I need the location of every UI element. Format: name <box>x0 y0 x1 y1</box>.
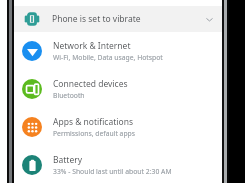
staticText: Wi-Fi, Mobile, Data usage, Hotspot <box>53 53 163 62</box>
staticText: Battery <box>53 154 83 166</box>
other: Expand <box>205 15 214 24</box>
button[interactable]: Connected devices <box>14 70 222 108</box>
staticText: 33% - Should last until about 2:30 AM <box>53 167 172 176</box>
staticText: Network & Internet <box>53 40 131 52</box>
button[interactable]: Apps & notifications <box>14 108 222 146</box>
staticText: Apps & notifications <box>53 116 133 128</box>
staticText: Connected devices <box>53 78 128 90</box>
button[interactable]: Battery <box>14 146 222 183</box>
staticText: Bluetooth <box>53 91 85 100</box>
staticText: Phone is set to vibrate <box>52 13 141 25</box>
button[interactable]: Phone is set to vibrate <box>14 6 222 32</box>
button[interactable]: Network & Internet <box>14 32 222 70</box>
staticText: Permissions, default apps <box>53 129 136 138</box>
